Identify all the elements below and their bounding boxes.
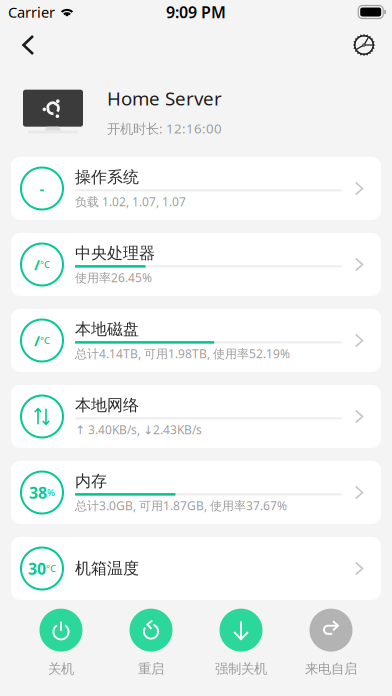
staticText: 总计4.14TB, 可用1.98TB, 使用率52.19% bbox=[75, 346, 290, 362]
button[interactable]: / bbox=[11, 309, 381, 372]
button[interactable]: 关机 bbox=[16, 609, 106, 677]
staticText: °C bbox=[40, 258, 50, 271]
button[interactable]: 来电自启 bbox=[286, 609, 376, 677]
button[interactable]: 38 bbox=[11, 461, 381, 524]
staticText: 总计3.0GB, 可用1.87GB, 使用率37.67% bbox=[75, 498, 287, 514]
staticText: 开机时长: 12:16:00 bbox=[107, 119, 222, 137]
staticText: 来电自启 bbox=[305, 661, 357, 677]
button[interactable]: Settings bbox=[342, 23, 386, 67]
staticText: 重启 bbox=[138, 661, 164, 677]
staticText: % bbox=[47, 486, 55, 499]
staticText: 30 bbox=[28, 558, 46, 579]
button[interactable]: 本地网络 bbox=[11, 385, 381, 448]
staticText: 强制关机 bbox=[215, 661, 267, 677]
staticText: / bbox=[34, 331, 40, 350]
staticText: 中央处理器 bbox=[75, 243, 155, 263]
button[interactable]: Back bbox=[6, 23, 50, 67]
staticText: 机箱温度 bbox=[75, 559, 139, 578]
button[interactable]: 强制关机 bbox=[196, 609, 286, 677]
staticText: / bbox=[34, 255, 40, 274]
staticText: °C bbox=[46, 562, 56, 575]
button[interactable]: / bbox=[11, 233, 381, 296]
staticText: - bbox=[39, 179, 44, 198]
staticText: °C bbox=[40, 334, 50, 347]
staticText: ↑ 3.40KB/s, ↓2.43KB/s bbox=[75, 422, 202, 438]
button[interactable]: - bbox=[11, 157, 381, 220]
button[interactable]: 30 bbox=[11, 537, 381, 600]
staticText: 关机 bbox=[48, 661, 74, 677]
staticText: Home Server bbox=[107, 86, 222, 111]
staticText: 操作系统 bbox=[75, 167, 139, 187]
staticText: 本地磁盘 bbox=[75, 319, 139, 339]
staticText: Carrier bbox=[8, 2, 55, 22]
staticText: 使用率26.45% bbox=[75, 270, 152, 286]
staticText: 负载 1.02, 1.07, 1.07 bbox=[75, 194, 186, 210]
staticText: 本地网络 bbox=[75, 395, 139, 415]
button[interactable]: 重启 bbox=[106, 609, 196, 677]
staticText: 内存 bbox=[75, 471, 107, 491]
staticText: 9:09 PM bbox=[166, 1, 226, 23]
staticText: 38 bbox=[29, 482, 47, 503]
